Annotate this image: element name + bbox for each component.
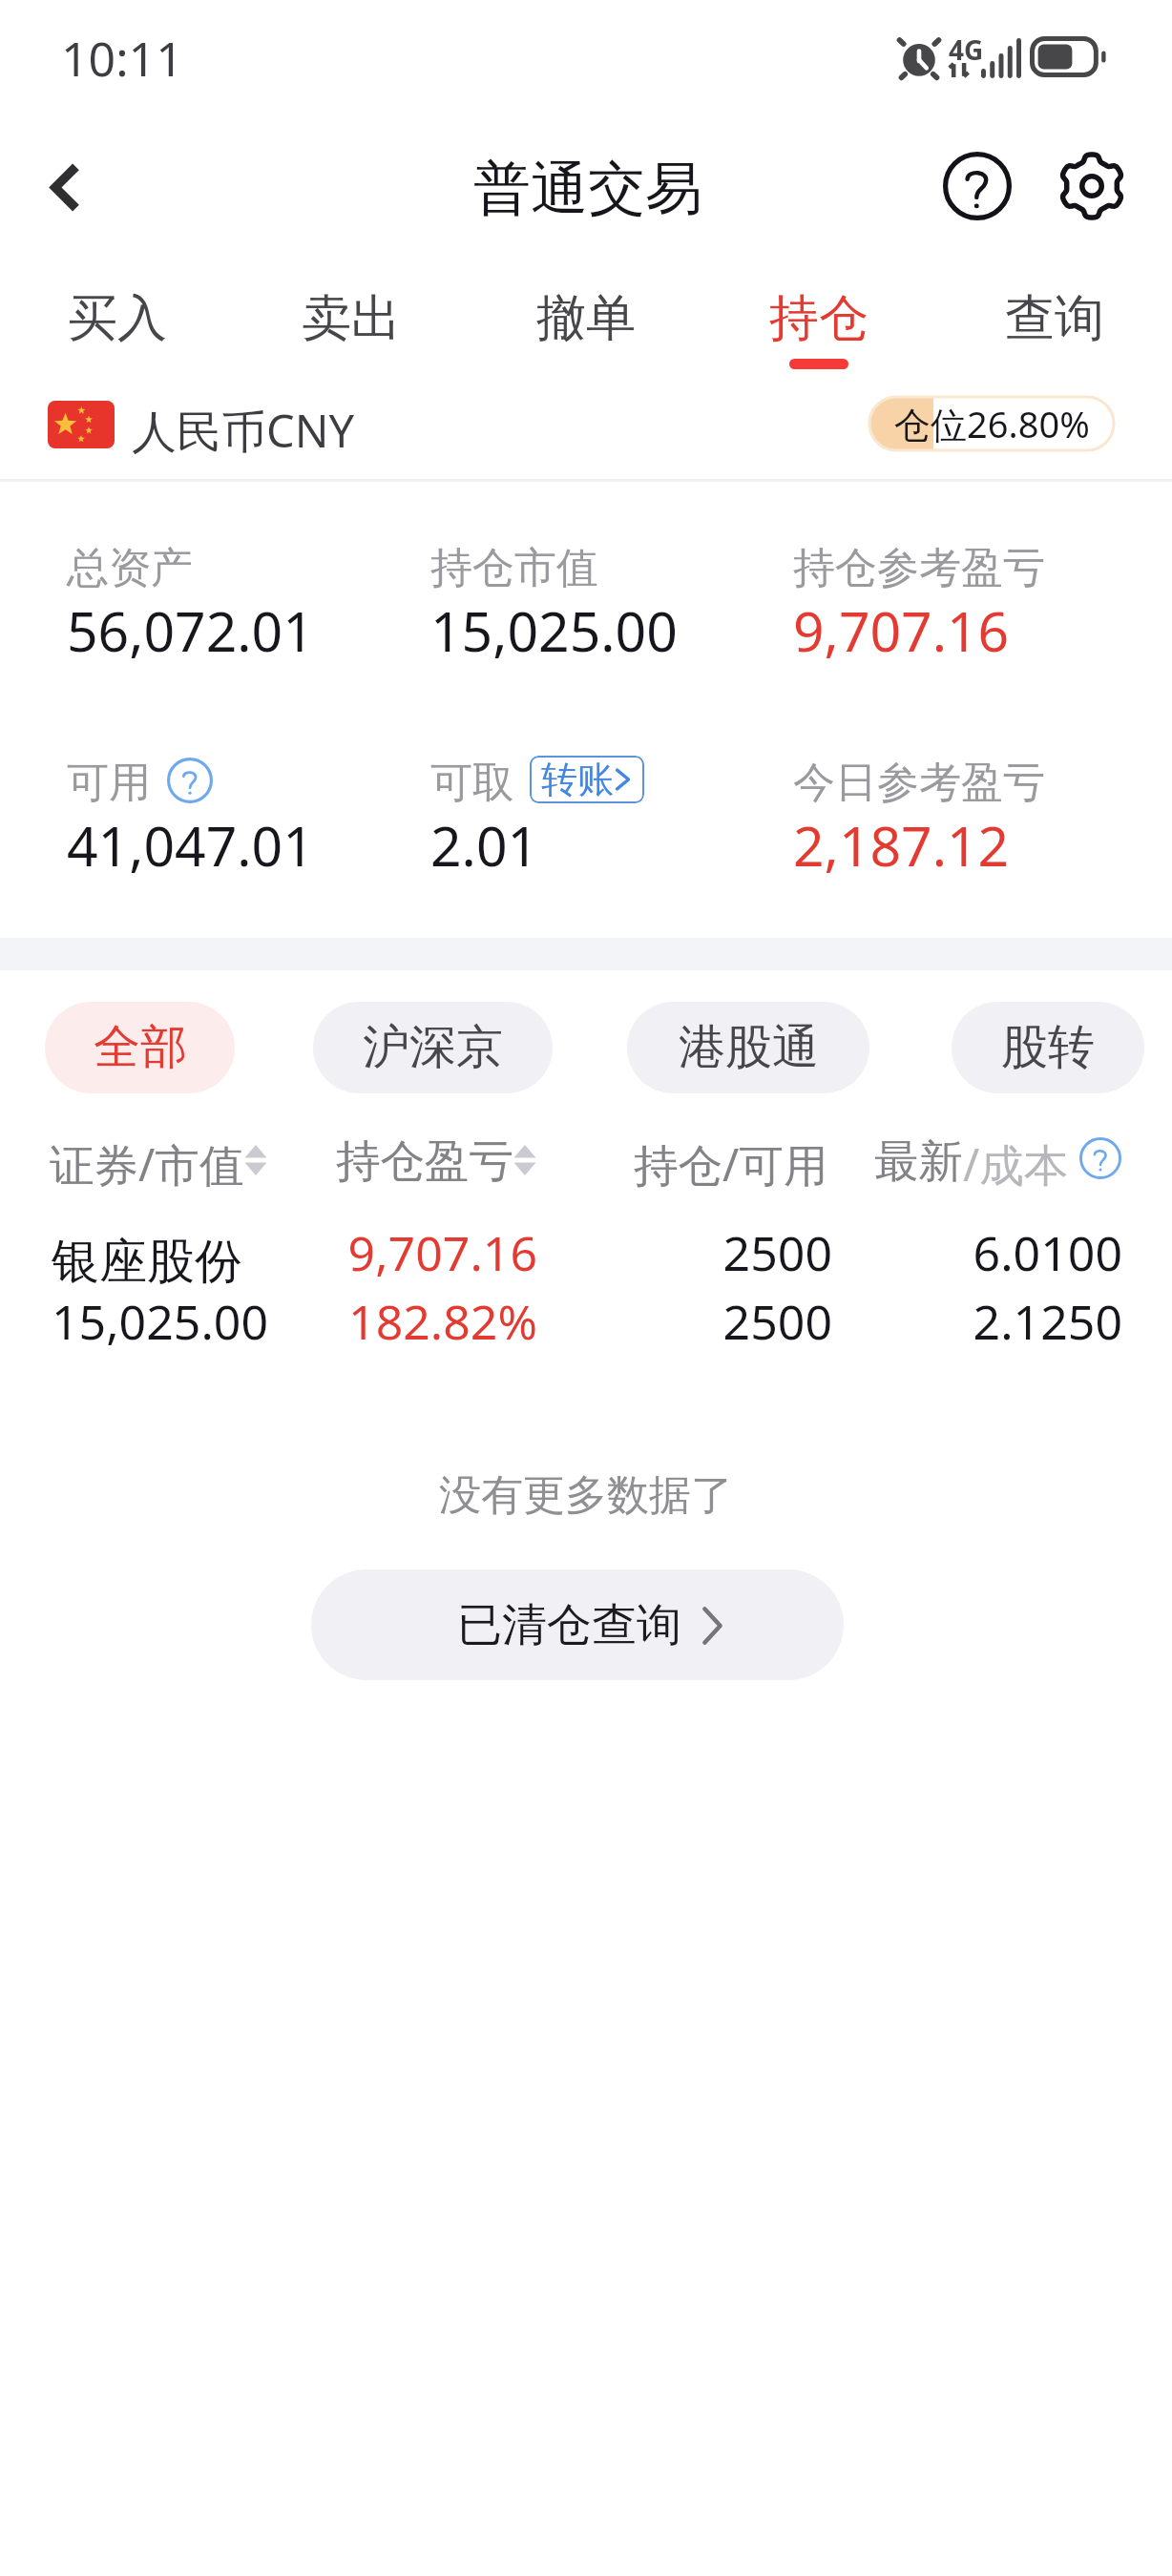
staticText: 总资产 <box>67 542 193 594</box>
staticText: 持仓参考盈亏 <box>793 542 1045 594</box>
staticText: 9,707.16 <box>793 593 1010 668</box>
button[interactable]: 港股通 <box>627 1002 869 1093</box>
button[interactable]: 已清仓查询 <box>311 1569 844 1680</box>
staticText: 撤单 <box>536 287 636 350</box>
staticText: 持仓 <box>769 287 869 350</box>
button[interactable]: 沪深京 <box>313 1002 553 1093</box>
button[interactable]: Available balance info <box>167 758 213 803</box>
staticText: 15,025.00 <box>430 593 678 668</box>
button[interactable]: 持仓 <box>702 269 935 382</box>
button[interactable]: 转账 <box>530 756 644 803</box>
staticText: 2.01 <box>430 808 539 883</box>
button[interactable]: 全部 <box>45 1002 235 1093</box>
staticText: 2500 <box>355 1220 832 1285</box>
button[interactable]: 股转 <box>952 1002 1144 1093</box>
staticText: 持仓盈亏 <box>336 1133 513 1190</box>
button[interactable]: 证券/市值 <box>44 1115 273 1190</box>
staticText: 6.0100 <box>645 1220 1122 1285</box>
staticText: 没有更多数据了 <box>0 1469 1172 1522</box>
staticText: 2,187.12 <box>793 808 1010 883</box>
button[interactable]: 卖出 <box>235 269 468 382</box>
staticText: 41,047.01 <box>67 808 314 883</box>
staticText: 证券/市值 <box>50 1133 244 1195</box>
staticText: 查询 <box>1005 287 1104 350</box>
staticText: 可取 <box>430 757 514 809</box>
staticText: 2.1250 <box>645 1289 1122 1354</box>
staticText: 15,025.00 <box>52 1289 268 1354</box>
staticText: 人民币CNY <box>132 400 355 461</box>
button[interactable]: Price info <box>1079 1137 1121 1179</box>
staticText: 股转 <box>1001 1018 1095 1077</box>
button[interactable]: 买入 <box>1 269 234 382</box>
staticText: 港股通 <box>679 1018 819 1077</box>
staticText: 银座股份 <box>52 1232 242 1292</box>
staticText: 10:11 <box>61 26 183 91</box>
staticText: 普通交易 <box>473 153 702 225</box>
staticText: 可用 <box>67 757 151 809</box>
staticText: 9,707.16 <box>60 1220 537 1285</box>
staticText: 卖出 <box>302 287 401 350</box>
staticText: 2500 <box>355 1289 832 1354</box>
staticText: 56,072.01 <box>67 593 314 668</box>
button[interactable]: 查询 <box>938 269 1171 382</box>
button[interactable]: 仓位26.80% <box>869 397 1114 450</box>
button[interactable]: Back <box>0 120 127 254</box>
staticText: 买入 <box>68 287 167 350</box>
staticText: 4G <box>949 31 984 68</box>
staticText: 持仓/可用 <box>634 1133 828 1195</box>
staticText: 转账 <box>541 757 614 802</box>
staticText: 沪深京 <box>363 1018 503 1077</box>
staticText: 今日参考盈亏 <box>793 757 1045 809</box>
staticText: /成本 <box>963 1133 1069 1195</box>
staticText: 全部 <box>94 1018 187 1077</box>
staticText: 已清仓查询 <box>457 1597 681 1653</box>
button[interactable]: 银座股份 <box>0 1212 1172 1364</box>
staticText: 持仓市值 <box>430 542 598 594</box>
staticText: 仓位26.80% <box>894 399 1090 448</box>
button[interactable]: 人民币CNY <box>38 387 370 466</box>
button[interactable]: 持仓盈亏 <box>330 1115 542 1190</box>
button[interactable]: Help <box>924 133 1031 239</box>
button[interactable]: 撤单 <box>470 269 702 382</box>
button[interactable]: Settings <box>1038 133 1145 239</box>
staticText: 182.82% <box>60 1289 537 1354</box>
staticText: 最新 <box>874 1133 963 1190</box>
